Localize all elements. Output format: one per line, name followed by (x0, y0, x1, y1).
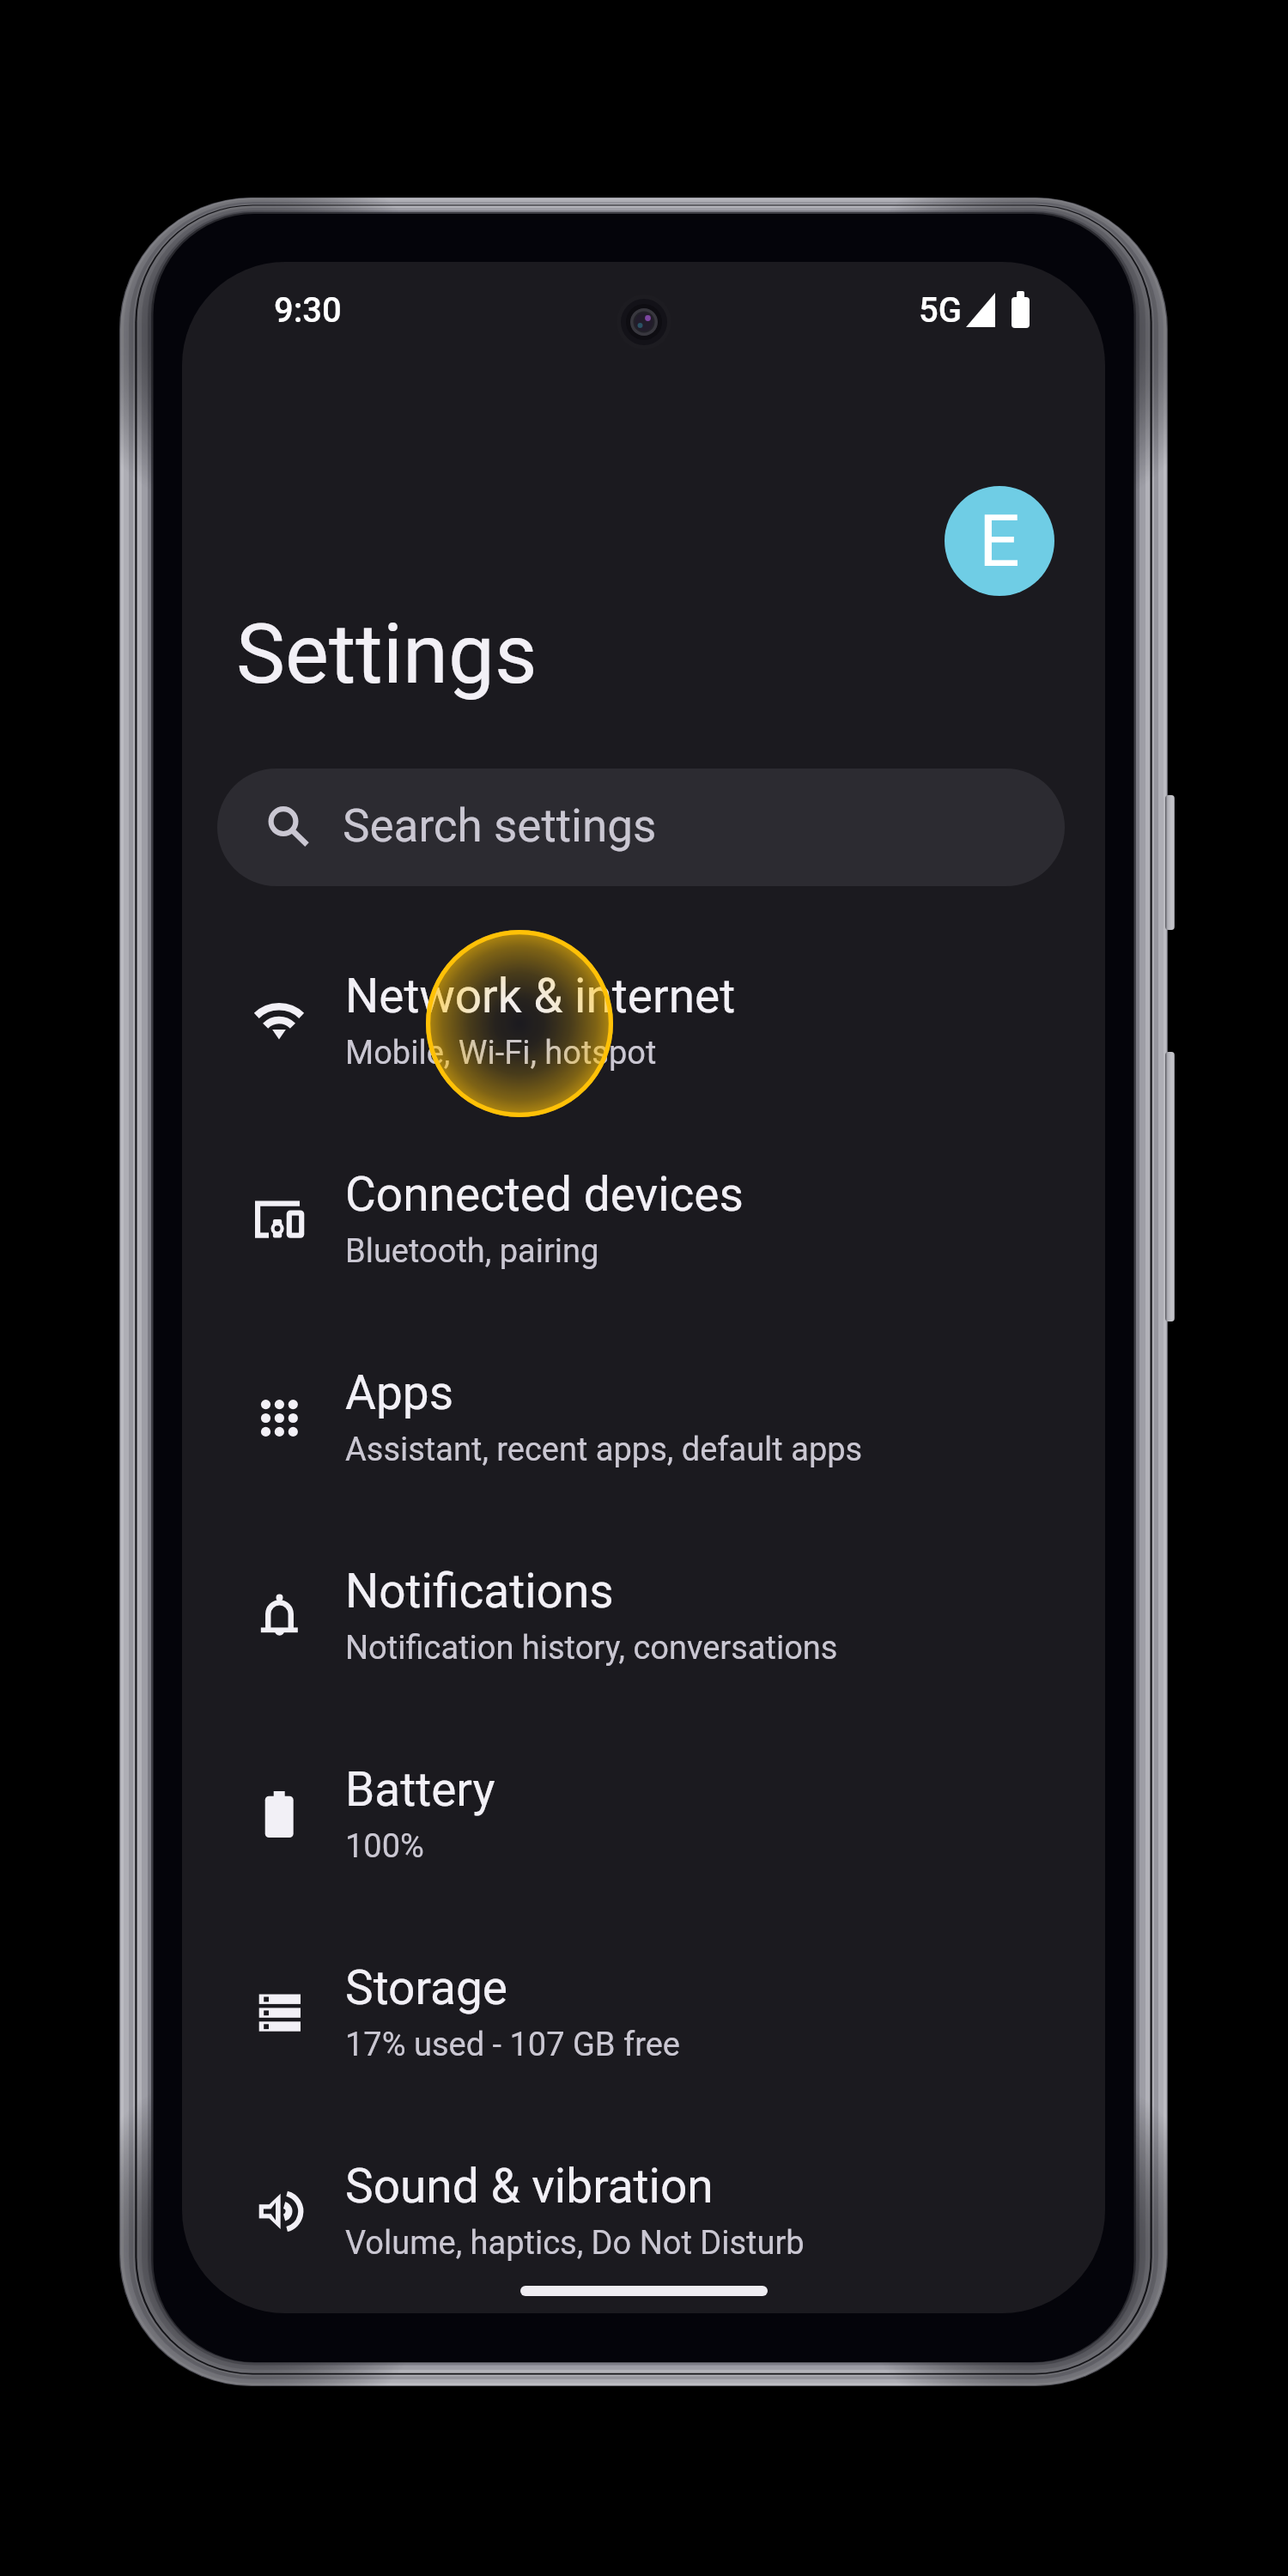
staticText: Bluetooth, pairing (345, 1232, 599, 1271)
staticText: 100% (345, 1827, 424, 1866)
staticText: Connected devices (345, 1167, 744, 1222)
button[interactable]: Storage (217, 1955, 1065, 2093)
button[interactable]: Sound and vibration (217, 2154, 1065, 2291)
staticText: E (979, 499, 1020, 583)
staticText: Storage (345, 1960, 508, 2015)
staticText: Assistant, recent apps, default apps (345, 1431, 863, 1469)
staticText: 17% used - 107 GB free (345, 2026, 680, 2064)
button[interactable]: Battery (217, 1757, 1065, 1894)
staticText: Battery (345, 1762, 495, 1817)
button[interactable]: Apps (217, 1360, 1065, 1498)
button[interactable]: Account (945, 486, 1054, 596)
staticText: 5G (919, 290, 962, 331)
staticText: Sound & vibration (345, 2159, 714, 2214)
staticText: Search settings (343, 799, 657, 853)
staticText: Notifications (345, 1564, 614, 1619)
staticText: Mobile, Wi-Fi, hotspot (345, 1034, 657, 1072)
button[interactable]: Connected devices (217, 1162, 1065, 1299)
staticText: Network & internet (345, 969, 736, 1024)
staticText: Volume, haptics, Do Not Disturb (345, 2224, 805, 2263)
button[interactable]: Network and internet (217, 963, 1065, 1101)
button[interactable]: Notifications (217, 1558, 1065, 1696)
staticText: Notification history, conversations (345, 1629, 838, 1668)
staticText: Apps (345, 1365, 454, 1420)
staticText: 9:30 (274, 290, 342, 331)
button[interactable] (217, 769, 1065, 886)
staticText: Settings (236, 606, 538, 703)
